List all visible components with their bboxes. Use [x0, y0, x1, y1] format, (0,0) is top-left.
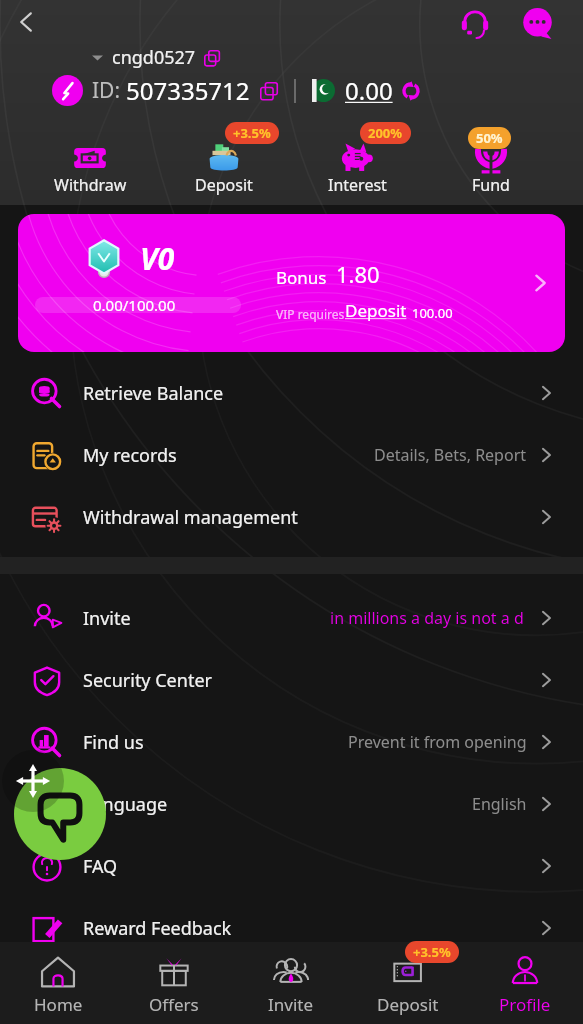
staticText: Deposit: [345, 299, 407, 322]
staticText: My records: [83, 443, 177, 468]
staticText: 507335712: [126, 74, 250, 107]
button[interactable]: Withdraw: [38, 125, 142, 199]
button[interactable]: Deposit: [172, 125, 276, 199]
staticText: Security Center: [83, 668, 212, 693]
button[interactable]: Find us: [0, 711, 583, 773]
staticText: 50%: [476, 129, 503, 147]
staticText: Offers: [149, 993, 199, 1016]
button[interactable]: My records: [0, 424, 583, 486]
staticText: 1.80: [336, 259, 380, 289]
staticText: Invite: [268, 993, 314, 1016]
staticText: Interest: [328, 174, 387, 196]
staticText: +3.5%: [233, 124, 271, 142]
staticText: Home: [34, 993, 83, 1016]
staticText: 0.00: [345, 74, 393, 107]
staticText: Fund: [472, 174, 510, 196]
button[interactable]: Security Center: [0, 649, 583, 711]
button[interactable]: Withdrawal management: [0, 486, 583, 548]
staticText: Details, Bets, Report: [374, 444, 527, 466]
button[interactable]: V0: [18, 214, 565, 352]
staticText: ID:: [92, 76, 126, 105]
button[interactable]: Invite: [232, 942, 349, 1024]
staticText: +3.5%: [413, 943, 451, 961]
button[interactable]: Language: [0, 773, 583, 835]
staticText: Prevent it from opening: [348, 731, 527, 753]
staticText: FAQ: [83, 854, 118, 879]
staticText: Withdrawal management: [83, 505, 298, 530]
staticText: English: [472, 793, 527, 815]
staticText: Deposit: [377, 993, 439, 1016]
staticText: Profile: [499, 993, 551, 1016]
button[interactable]: Offers: [116, 942, 232, 1024]
staticText: Find us: [83, 730, 144, 755]
button[interactable]: Messages: [514, 0, 560, 46]
staticText: V0: [140, 238, 175, 279]
button[interactable]: Live chat: [14, 768, 106, 860]
staticText: Reward Feedback: [83, 916, 232, 941]
staticText: in millions a day is not a d: [330, 607, 524, 629]
button[interactable]: Profile: [466, 942, 583, 1024]
staticText: 200%: [368, 124, 403, 142]
staticText: Bonus: [276, 266, 327, 289]
staticText: Deposit: [195, 174, 253, 196]
staticText: 0.00/100.00: [93, 295, 176, 315]
staticText: 100.00: [412, 304, 453, 322]
staticText: Invite: [83, 606, 131, 631]
button[interactable]: Retrieve Balance: [0, 362, 583, 424]
staticText: Withdraw: [54, 174, 127, 196]
button[interactable]: Interest: [305, 125, 409, 199]
button[interactable]: Deposit: [349, 942, 466, 1024]
button[interactable]: Fund: [439, 125, 543, 199]
button[interactable]: Home: [0, 942, 116, 1024]
staticText: cngd0527: [112, 45, 196, 70]
staticText: VIP requires: [276, 306, 345, 322]
button[interactable]: Invite: [0, 587, 583, 649]
button[interactable]: Back: [4, 0, 48, 44]
staticText: Language: [83, 792, 168, 817]
staticText: Retrieve Balance: [83, 381, 224, 406]
button[interactable]: FAQ: [0, 835, 583, 897]
button[interactable]: Reward Feedback: [0, 897, 583, 959]
button[interactable]: Customer support: [452, 0, 498, 46]
